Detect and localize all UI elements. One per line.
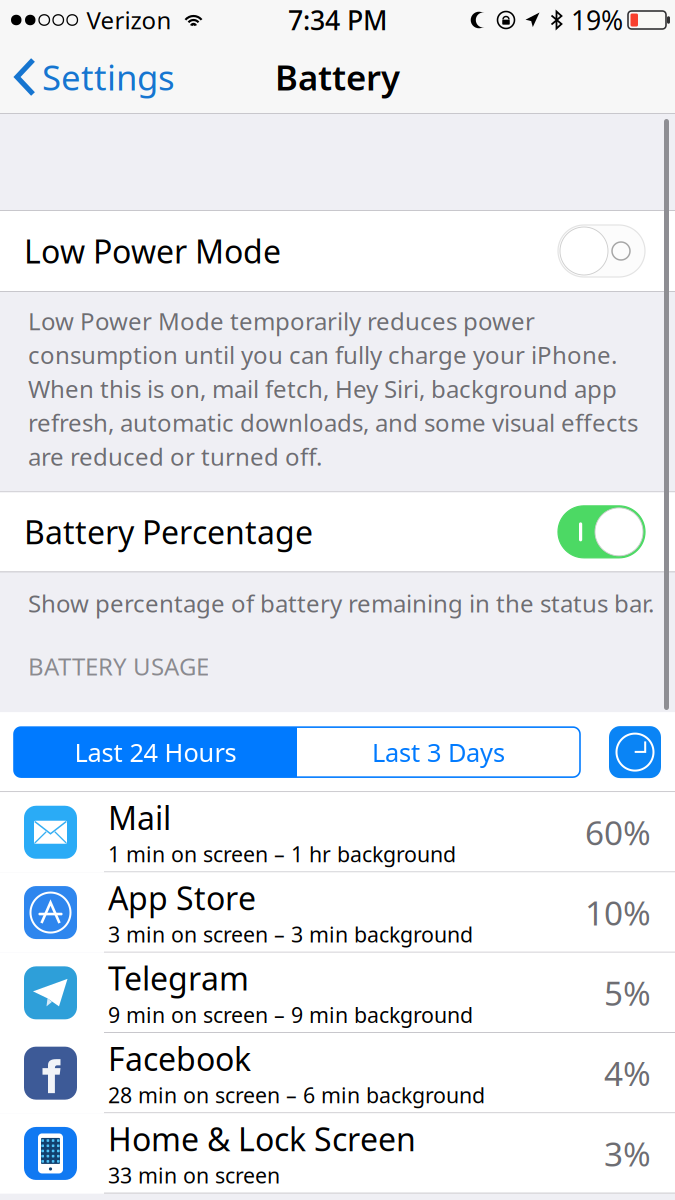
button[interactable]: Mail bbox=[0, 792, 675, 872]
staticText: 33 min on screen bbox=[108, 1161, 280, 1189]
button[interactable]: Settings bbox=[0, 45, 185, 109]
button[interactable]: Show battery usage by time bbox=[609, 726, 661, 778]
staticText: Low Power Mode bbox=[24, 230, 281, 272]
button[interactable]: Low Power Mode bbox=[0, 211, 675, 291]
staticText: Low Power Mode temporarily reduces power… bbox=[28, 305, 638, 472]
staticText: Battery Percentage bbox=[24, 511, 313, 553]
staticText: 3% bbox=[604, 1131, 651, 1176]
staticText: Verizon bbox=[86, 4, 171, 36]
staticText: Last 24 Hours bbox=[74, 735, 236, 769]
staticText: Mail bbox=[108, 796, 171, 839]
staticText: 3 min on screen – 3 min background bbox=[108, 920, 473, 948]
staticText: 9 min on screen – 9 min background bbox=[108, 1000, 473, 1029]
staticText: 7:34 PM bbox=[288, 2, 387, 38]
button[interactable]: Battery Percentage bbox=[0, 492, 675, 571]
button[interactable]: Telegram bbox=[0, 953, 675, 1033]
staticText: BATTERY USAGE bbox=[28, 650, 209, 682]
staticText: Battery bbox=[275, 54, 400, 100]
button[interactable]: Last 24 Hours bbox=[14, 727, 297, 777]
staticText: Last 3 Days bbox=[372, 735, 505, 769]
button[interactable]: Facebook bbox=[0, 1033, 675, 1113]
staticText: 28 min on screen – 6 min background bbox=[108, 1081, 485, 1109]
staticText: 5% bbox=[604, 971, 651, 1015]
button[interactable]: App Store bbox=[0, 872, 675, 953]
staticText: 1 min on screen – 1 hr background bbox=[108, 840, 456, 868]
staticText: Telegram bbox=[108, 957, 249, 999]
staticText: App Store bbox=[108, 877, 256, 919]
staticText: 4% bbox=[604, 1051, 651, 1095]
staticText: Settings bbox=[42, 54, 175, 100]
staticText: Facebook bbox=[108, 1037, 251, 1080]
staticText: 60% bbox=[585, 810, 651, 854]
staticText: Home & Lock Screen bbox=[108, 1117, 416, 1160]
button[interactable]: Last 3 Days bbox=[297, 727, 580, 777]
button[interactable]: Home & Lock Screen bbox=[0, 1113, 675, 1194]
staticText: 19% bbox=[571, 2, 623, 38]
staticText: Show percentage of battery remaining in … bbox=[28, 587, 654, 619]
staticText: 10% bbox=[585, 890, 651, 935]
